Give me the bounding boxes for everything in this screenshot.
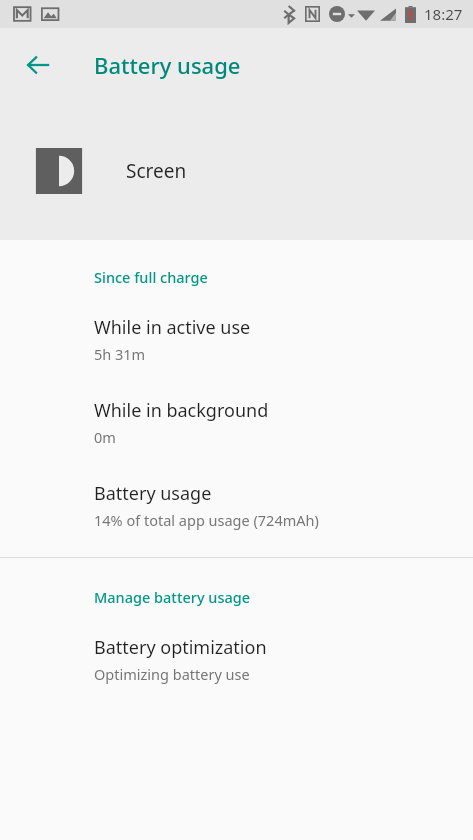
staticText: Manage battery usage — [94, 587, 251, 607]
staticText: While in background — [94, 398, 269, 423]
button[interactable]: Battery optimization — [0, 635, 473, 684]
staticText: While in active use — [94, 315, 251, 340]
button[interactable]: Navigate up — [14, 41, 62, 89]
staticText: Battery usage — [94, 50, 241, 80]
staticText: Battery optimization — [94, 635, 267, 660]
staticText: Screen — [126, 158, 187, 184]
staticText: 14% of total app usage (724mAh) — [94, 510, 319, 530]
staticText: Since full charge — [94, 267, 208, 287]
staticText: 0m — [94, 427, 116, 447]
staticText: Optimizing battery use — [94, 664, 250, 684]
staticText: Battery usage — [94, 481, 212, 506]
staticText: 18:27 — [424, 4, 463, 24]
staticText: 5h 31m — [94, 344, 146, 364]
